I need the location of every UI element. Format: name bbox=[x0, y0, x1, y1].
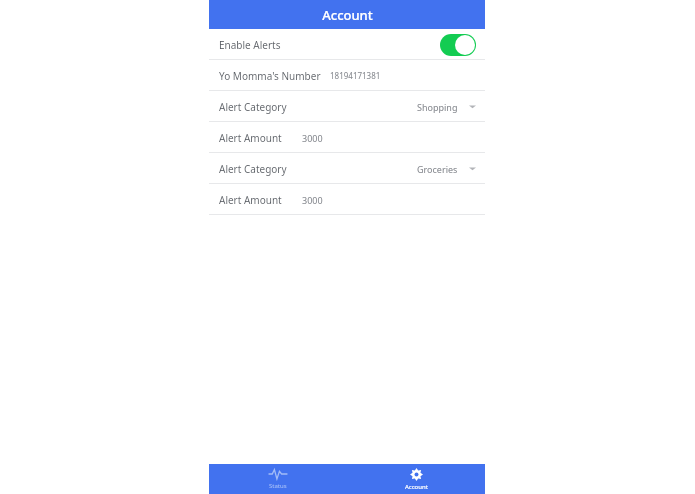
staticText: Alert Category bbox=[219, 162, 287, 176]
staticText: Account bbox=[405, 483, 428, 491]
staticText: Status bbox=[269, 482, 287, 490]
staticText: Yo Momma's Number bbox=[219, 69, 321, 83]
staticText: Groceries bbox=[417, 163, 458, 175]
staticText: 3000 bbox=[302, 132, 323, 144]
staticText: Alert Amount bbox=[219, 193, 282, 207]
staticText: Enable Alerts bbox=[219, 38, 281, 52]
staticText: 3000 bbox=[302, 194, 323, 206]
staticText: Alert Category bbox=[219, 100, 287, 114]
button[interactable]: Alert Amount bbox=[209, 184, 485, 215]
staticText: Shopping bbox=[417, 101, 458, 113]
button[interactable]: Yo Momma's Number bbox=[209, 60, 485, 91]
button[interactable]: Status bbox=[209, 464, 347, 494]
staticText: Alert Amount bbox=[219, 131, 282, 145]
button[interactable]: Enable Alerts bbox=[440, 34, 476, 56]
button[interactable]: Alert Category bbox=[209, 153, 485, 184]
button[interactable]: Alert Category bbox=[209, 91, 485, 122]
button[interactable]: Enable Alerts bbox=[209, 29, 485, 60]
button[interactable]: Account bbox=[209, 0, 485, 29]
staticText: 18194171381 bbox=[330, 70, 381, 81]
staticText: Account bbox=[322, 6, 373, 24]
button[interactable]: Account bbox=[347, 464, 485, 494]
button[interactable]: Alert Amount bbox=[209, 122, 485, 153]
